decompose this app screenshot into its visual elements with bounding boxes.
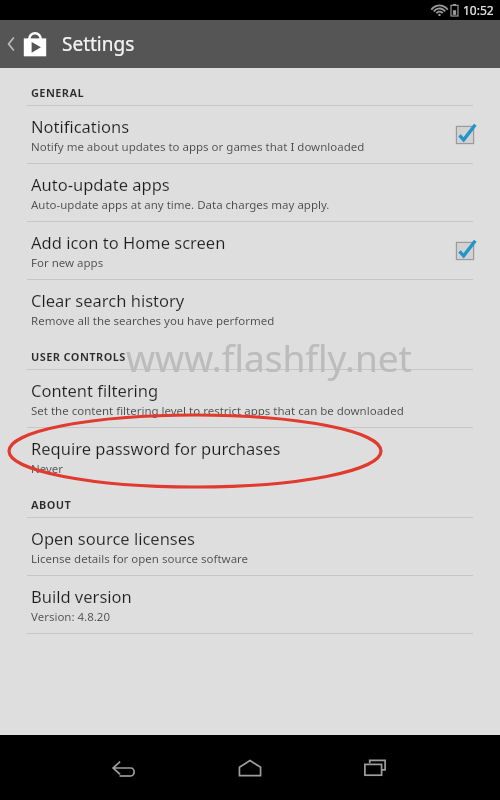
staticText: USER CONTROLS	[31, 349, 126, 364]
staticText: For new apps	[31, 255, 104, 271]
staticText: Never	[31, 461, 64, 477]
button[interactable]: Recent apps	[347, 735, 403, 800]
button[interactable]: Require password for purchases	[0, 428, 500, 485]
button[interactable]: Back	[97, 735, 153, 800]
staticText: Version: 4.8.20	[31, 609, 110, 625]
button[interactable]: Content filtering	[0, 370, 500, 427]
button[interactable]: Build version	[0, 576, 500, 633]
button[interactable]: Auto-update apps	[0, 164, 500, 221]
staticText: Auto-update apps	[31, 173, 170, 195]
button[interactable]: Clear search history	[0, 280, 500, 337]
staticText: License details for open source software	[31, 551, 249, 567]
staticText: Set the content filtering level to restr…	[31, 403, 404, 419]
button[interactable]: Add icon to Home screen	[0, 222, 500, 279]
staticText: Settings	[62, 31, 135, 57]
button[interactable]: Toggle setting	[452, 122, 478, 148]
staticText: Content filtering	[31, 379, 159, 401]
button[interactable]: Toggle setting	[452, 238, 478, 264]
staticText: GENERAL	[31, 85, 85, 100]
button[interactable]: Open source licenses	[0, 518, 500, 575]
staticText: Open source licenses	[31, 527, 195, 549]
button[interactable]: Navigate up	[0, 20, 51, 68]
staticText: Clear search history	[31, 289, 185, 311]
staticText: Notify me about updates to apps or games…	[31, 139, 365, 155]
button[interactable]: Notifications	[0, 106, 500, 163]
staticText: Add icon to Home screen	[31, 231, 226, 253]
staticText: ABOUT	[31, 497, 72, 512]
staticText: Auto-update apps at any time. Data charg…	[31, 197, 330, 213]
staticText: 10:52	[463, 2, 494, 18]
staticText: Require password for purchases	[31, 437, 281, 459]
staticText: Remove all the searches you have perform…	[31, 313, 275, 329]
button[interactable]: Home	[222, 735, 278, 800]
staticText: Notifications	[31, 115, 130, 137]
staticText: Build version	[31, 585, 132, 607]
staticText: www.flashfly.net	[126, 332, 412, 382]
